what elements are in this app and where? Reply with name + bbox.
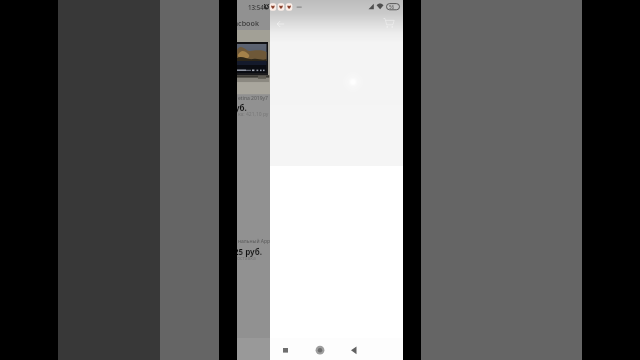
staticText: оставка (237, 255, 256, 262)
button[interactable]: Recents (278, 344, 294, 360)
button[interactable]: Back (274, 17, 288, 31)
button[interactable]: Home (312, 344, 328, 360)
staticText: 25 руб. (237, 246, 262, 257)
staticText: уб. (237, 102, 247, 113)
button[interactable]: Cart (382, 16, 396, 30)
staticText: ка: 421,10 ру (238, 111, 269, 118)
staticText: etina 2019у7 (238, 95, 268, 102)
staticText: acbook (237, 18, 259, 28)
staticText: 56 (389, 4, 395, 10)
button[interactable]: Back (346, 344, 362, 360)
staticText: 13:54 (248, 3, 264, 11)
staticText: нальный Appl (238, 238, 270, 245)
